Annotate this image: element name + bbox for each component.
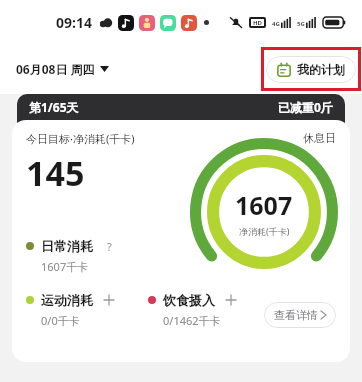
staticText: 饮食摄入 [163, 292, 215, 308]
staticText: 145 [26, 150, 85, 196]
button[interactable]: Help [102, 239, 116, 253]
staticText: 4G [272, 20, 280, 28]
staticText: 第1/65天 [29, 99, 79, 115]
button[interactable]: Add food [224, 293, 238, 307]
staticText: 我的计划 [297, 62, 345, 77]
staticText: 运动消耗 [41, 292, 93, 308]
staticText: 1607千卡 [41, 259, 89, 274]
button[interactable]: 第1/65天 [17, 94, 345, 136]
staticText: 0/0千卡 [41, 313, 80, 328]
staticText: 已减重0斤 [278, 99, 333, 115]
staticText: 5G [297, 20, 305, 28]
button[interactable]: 日常消耗 [26, 238, 116, 254]
button[interactable]: 查看详情 [264, 302, 336, 328]
button[interactable]: 06月08日 周四 [16, 61, 109, 77]
staticText: 休息日 [303, 131, 336, 145]
button[interactable]: 我的计划 [266, 56, 356, 83]
staticText: 查看详情 [274, 308, 318, 322]
staticText: 09:14 [56, 13, 92, 32]
staticText: 06月08日 周四 [16, 61, 95, 77]
other: Silent [229, 16, 243, 29]
staticText: ? [107, 239, 112, 253]
staticText: HD [253, 19, 262, 27]
button[interactable]: Add exercise [102, 293, 116, 307]
staticText: 1607 [235, 188, 293, 222]
staticText: 净消耗(千卡) [239, 225, 290, 237]
other: Battery [323, 17, 346, 28]
staticText: 日常消耗 [41, 238, 93, 254]
staticText: 0/1462千卡 [163, 313, 221, 328]
staticText: 今日目标·净消耗(千卡) [26, 131, 135, 146]
